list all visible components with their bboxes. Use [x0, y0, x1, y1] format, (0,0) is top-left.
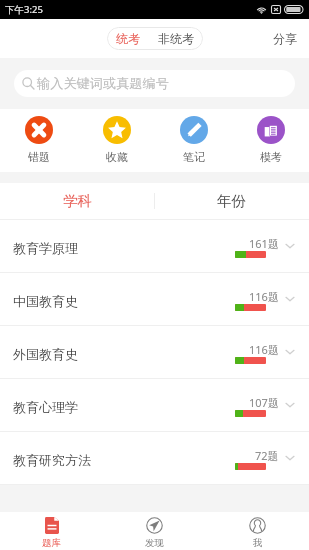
- button[interactable]: 学科: [0, 183, 154, 219]
- button[interactable]: 分享: [261, 19, 309, 58]
- staticText: 笔记: [183, 150, 205, 164]
- button[interactable]: 错题: [0, 109, 78, 164]
- staticText: 错题: [28, 150, 50, 164]
- staticText: 学科: [63, 192, 92, 210]
- button[interactable]: 发现: [103, 514, 206, 549]
- staticText: 教育研究方法: [13, 452, 91, 468]
- staticText: 107题: [249, 395, 279, 410]
- staticText: 发现: [145, 537, 164, 549]
- staticText: 教育学原理: [13, 240, 78, 256]
- button[interactable]: 年份: [154, 183, 309, 219]
- staticText: 我: [253, 537, 263, 549]
- button[interactable]: 收藏: [78, 109, 155, 164]
- staticText: 外国教育史: [13, 346, 78, 362]
- staticText: 教育心理学: [13, 399, 78, 415]
- staticText: 161题: [249, 236, 279, 251]
- staticText: 中国教育史: [13, 293, 78, 309]
- staticText: 输入关键词或真题编号: [37, 75, 169, 92]
- button[interactable]: 题库: [0, 514, 103, 549]
- button[interactable]: 我: [206, 514, 309, 549]
- button[interactable]: 模考: [232, 109, 309, 164]
- button[interactable]: 教育心理学: [0, 379, 309, 431]
- staticText: 116题: [249, 342, 279, 357]
- staticText: 统考: [116, 31, 140, 46]
- button[interactable]: 外国教育史: [0, 326, 309, 378]
- button[interactable]: 教育学原理: [0, 220, 309, 272]
- staticText: 分享: [273, 31, 297, 46]
- staticText: 72题: [255, 448, 279, 463]
- button[interactable]: 笔记: [155, 109, 232, 164]
- button[interactable]: 教育研究方法: [0, 432, 309, 484]
- staticText: 下午3:25: [5, 3, 43, 16]
- button[interactable]: 统考: [107, 27, 149, 50]
- staticText: 模考: [260, 150, 282, 164]
- staticText: 收藏: [106, 150, 128, 164]
- staticText: 题库: [42, 537, 61, 549]
- staticText: 年份: [217, 192, 246, 210]
- staticText: 116题: [249, 289, 279, 304]
- button[interactable]: 输入关键词或真题编号: [14, 70, 295, 97]
- staticText: 非统考: [158, 31, 194, 46]
- button[interactable]: 中国教育史: [0, 273, 309, 325]
- button[interactable]: 非统考: [149, 27, 203, 50]
